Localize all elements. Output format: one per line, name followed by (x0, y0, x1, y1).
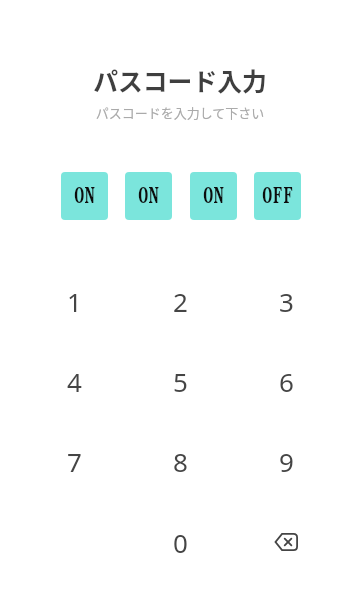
button[interactable]: OFF (254, 172, 301, 220)
button[interactable]: 3 (233, 261, 339, 341)
staticText: 0 (173, 525, 188, 560)
staticText: 2 (173, 284, 188, 319)
button[interactable]: 8 (127, 421, 233, 501)
staticText: 5 (173, 364, 188, 399)
button[interactable]: ON (125, 172, 172, 220)
other: Backspace (274, 533, 298, 551)
staticText: ON (203, 185, 224, 206)
staticText: 6 (279, 364, 294, 399)
button[interactable]: Backspace (233, 502, 339, 582)
staticText: ON (138, 185, 159, 206)
button[interactable]: 6 (233, 341, 339, 421)
staticText: 3 (279, 284, 294, 319)
button[interactable]: 9 (233, 421, 339, 501)
button[interactable]: ON (61, 172, 108, 220)
button[interactable]: 2 (127, 261, 233, 341)
button[interactable]: 1 (21, 261, 127, 341)
staticText: OFF (262, 185, 294, 206)
staticText: 7 (67, 444, 82, 479)
button[interactable]: 4 (21, 341, 127, 421)
button[interactable]: ON (190, 172, 237, 220)
button[interactable]: 0 (127, 502, 233, 582)
staticText: 8 (173, 444, 188, 479)
staticText: パスコードを入力して下さい (0, 103, 360, 122)
staticText: 9 (279, 444, 294, 479)
staticText: ON (74, 185, 95, 206)
staticText: 4 (67, 364, 82, 399)
staticText: 1 (67, 284, 82, 319)
staticText: パスコード入力 (0, 62, 360, 98)
button[interactable]: 7 (21, 421, 127, 501)
button[interactable]: 5 (127, 341, 233, 421)
